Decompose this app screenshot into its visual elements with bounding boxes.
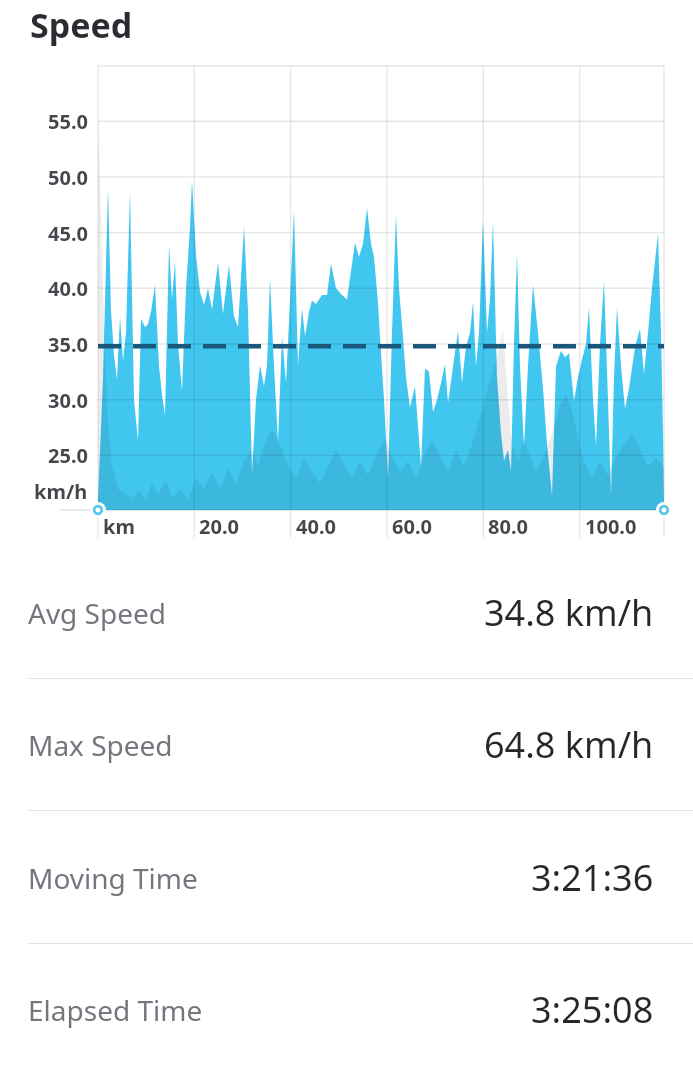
staticText: 64.8 km/h	[484, 720, 654, 769]
staticText: Speed	[30, 2, 133, 48]
staticText: Elapsed Time	[28, 991, 203, 1029]
staticText: 40.0	[296, 513, 336, 539]
staticText: 30.0	[48, 387, 88, 413]
staticText: 100.0	[585, 513, 637, 539]
staticText: 3:21:36	[531, 853, 654, 902]
staticText: 34.8 km/h	[484, 588, 654, 637]
staticText: 80.0	[488, 513, 528, 539]
staticText: 35.0	[48, 331, 88, 357]
staticText: 45.0	[48, 220, 88, 246]
staticText: 25.0	[48, 442, 88, 468]
staticText: Moving Time	[28, 859, 198, 897]
staticText: 50.0	[48, 164, 88, 190]
button[interactable]: Max Speed	[0, 678, 693, 811]
staticText: Max Speed	[28, 726, 173, 764]
button[interactable]: Moving Time	[0, 811, 693, 944]
button[interactable]: Avg Speed	[0, 546, 693, 679]
staticText: Avg Speed	[28, 594, 167, 632]
staticText: 40.0	[48, 275, 88, 301]
staticText: 60.0	[392, 513, 432, 539]
staticText: 55.0	[48, 108, 88, 134]
staticText: 20.0	[199, 513, 239, 539]
staticText: km/h	[34, 478, 88, 504]
button[interactable]: Elapsed Time	[0, 943, 693, 1076]
staticText: 3:25:08	[531, 985, 654, 1034]
staticText: km	[103, 513, 135, 539]
